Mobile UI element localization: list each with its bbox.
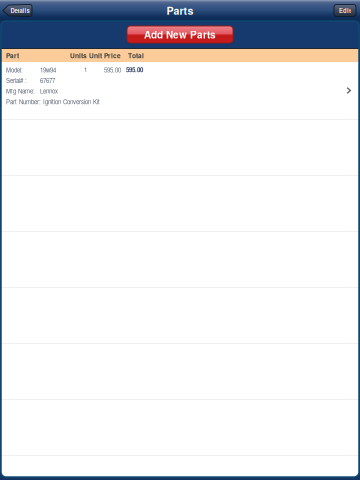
staticText: 595.00 [104,65,121,74]
staticText: Lennox [40,87,58,95]
staticText: Serial# : [6,76,27,85]
button[interactable]: Edit [334,4,356,16]
button[interactable]: Model: [1,62,359,119]
staticText: Parts [166,3,193,18]
staticText: Mfg Name: [6,87,35,95]
staticText: Model: [6,65,23,74]
button[interactable]: Details [3,4,32,16]
staticText: Details [10,6,29,15]
button[interactable]: Add New Parts [127,26,233,43]
staticText: Part Number: Ignition Conversion Kit [6,97,100,106]
staticText: 19w94 [40,65,56,74]
staticText: 1 [84,65,87,74]
staticText: Part [6,51,19,60]
staticText: 595.00 [126,65,143,74]
staticText: Add New Parts [144,27,216,42]
staticText: Units [70,51,87,60]
staticText: Edit [339,6,351,15]
staticText: Total [128,51,144,60]
staticText: 67677 [40,76,55,85]
staticText: Unit Price [89,51,121,60]
